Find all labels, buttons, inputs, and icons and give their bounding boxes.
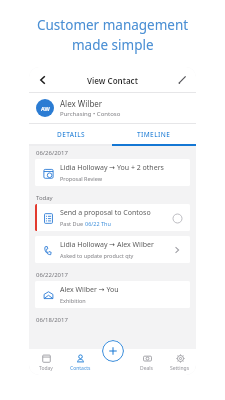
staticText: AW bbox=[41, 105, 50, 112]
staticText: Today bbox=[36, 194, 53, 202]
button[interactable]: Edit bbox=[173, 71, 191, 89]
staticText: Customer management bbox=[37, 16, 189, 34]
staticText: Today bbox=[39, 365, 53, 372]
staticText: 06/18/2017 bbox=[36, 316, 68, 324]
button[interactable]: Alex Wilber → You bbox=[35, 281, 190, 308]
staticText: 06/26/2017 bbox=[36, 149, 68, 157]
button[interactable]: Deals bbox=[130, 349, 163, 375]
staticText: Lidia Holloway → You + 2 others bbox=[60, 163, 164, 173]
button[interactable]: Lidia Holloway → You + 2 others bbox=[35, 159, 190, 186]
button[interactable]: Back bbox=[34, 71, 52, 89]
button[interactable]: DETAILS bbox=[29, 124, 112, 144]
button[interactable]: Contacts bbox=[63, 349, 97, 375]
staticText: 06/22/2017 bbox=[36, 271, 68, 279]
button[interactable]: Add bbox=[102, 340, 124, 362]
button[interactable]: TIMELINE bbox=[112, 124, 196, 144]
staticText: Proposal Review bbox=[60, 175, 103, 182]
staticText: Deals bbox=[140, 365, 153, 372]
staticText: Exhibition bbox=[60, 297, 86, 304]
staticText: Alex Wilber bbox=[60, 98, 103, 109]
staticText: Lidia Holloway → Alex Wilber bbox=[60, 240, 154, 250]
staticText: Past Due bbox=[60, 220, 85, 227]
button[interactable]: Send a proposal to Contoso bbox=[35, 204, 190, 231]
staticText: Settings bbox=[170, 365, 190, 372]
button[interactable]: Today bbox=[29, 349, 63, 375]
staticText: Purchasing • Contoso bbox=[60, 110, 121, 118]
staticText: Send a proposal to Contoso bbox=[60, 208, 151, 218]
button[interactable]: Lidia Holloway → Alex Wilber bbox=[35, 236, 190, 263]
staticText: TIMELINE bbox=[137, 130, 171, 139]
button[interactable]: Open details bbox=[169, 242, 185, 258]
staticText: Contacts bbox=[70, 365, 91, 372]
staticText: View Contact bbox=[87, 75, 138, 86]
button[interactable]: Settings bbox=[163, 349, 196, 375]
staticText: Asked to update product qty bbox=[60, 252, 134, 259]
staticText: DETAILS bbox=[57, 130, 85, 139]
button[interactable]: Complete task bbox=[169, 210, 185, 226]
staticText: 06/22 Thu bbox=[85, 220, 111, 227]
staticText: made simple bbox=[72, 36, 154, 54]
staticText: Alex Wilber → You bbox=[60, 285, 119, 295]
